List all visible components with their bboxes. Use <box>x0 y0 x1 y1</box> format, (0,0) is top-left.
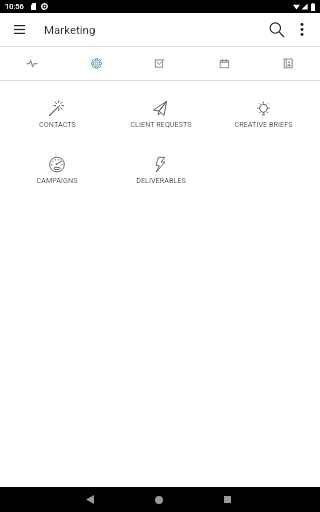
staticText: CONTACTS <box>39 120 76 128</box>
staticText: DELIVERABLES <box>136 176 186 184</box>
button[interactable]: Search <box>266 13 288 46</box>
button[interactable]: CAMPAIGNS <box>5 157 109 213</box>
button[interactable]: Back <box>76 487 104 512</box>
button[interactable]: Home <box>145 487 173 512</box>
button[interactable]: Recent apps <box>213 487 241 512</box>
button[interactable]: More options <box>288 13 316 46</box>
button[interactable]: CREATIVE BRIEFS <box>212 101 315 157</box>
button[interactable]: Calendar <box>192 47 256 80</box>
button[interactable]: Navigation drawer <box>0 13 38 46</box>
staticText: 10:56 <box>5 2 24 11</box>
button[interactable]: Settings <box>64 47 128 80</box>
button[interactable]: DELIVERABLES <box>109 157 212 213</box>
button[interactable]: Tasks <box>128 47 192 80</box>
button[interactable]: CLIENT REQUESTS <box>109 101 212 157</box>
button[interactable]: Activity <box>0 47 64 80</box>
staticText: Marketing <box>44 23 96 36</box>
staticText: CLIENT REQUESTS <box>130 120 192 128</box>
staticText: CREATIVE BRIEFS <box>234 120 293 128</box>
button[interactable]: CONTACTS <box>5 101 109 157</box>
staticText: CAMPAIGNS <box>36 176 78 184</box>
button[interactable]: Contacts <box>256 47 320 80</box>
